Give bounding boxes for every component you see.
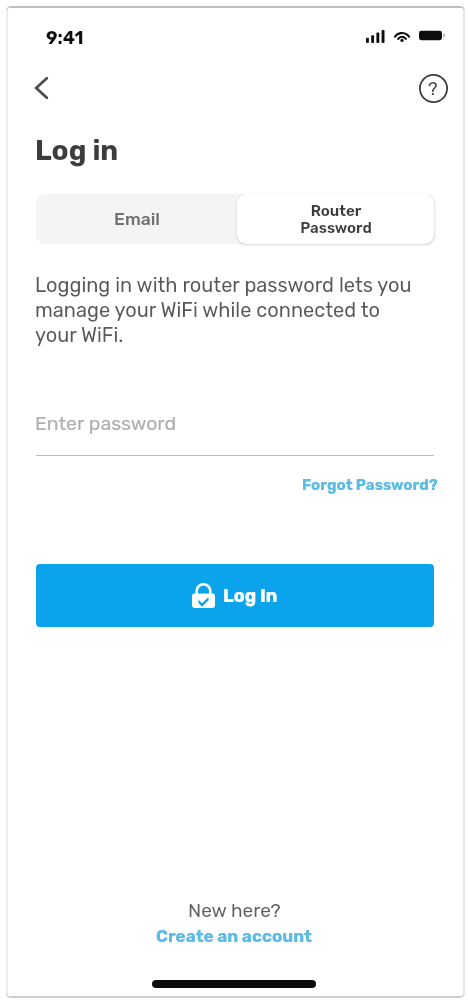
button[interactable]: Help [416,71,450,105]
button[interactable]: Create an account [156,926,312,946]
staticText: 9:41 [46,27,84,48]
staticText: Log In [223,585,278,606]
staticText: Create an account [156,926,312,946]
staticText: ? [428,78,438,99]
staticText: Logging in with router password lets you… [35,273,412,347]
staticText: Router Password [300,202,372,237]
staticText: Log in [35,134,119,167]
staticText: Forgot Password? [302,476,438,494]
button[interactable]: Router Password [237,194,434,244]
button[interactable]: Back [24,71,58,105]
button[interactable]: Log In [36,564,434,627]
staticText: New here? [188,899,281,922]
staticText: Enter password [35,412,177,435]
staticText: Email [114,209,160,230]
button[interactable]: Forgot Password? [302,476,438,494]
button[interactable]: Email [36,194,237,244]
